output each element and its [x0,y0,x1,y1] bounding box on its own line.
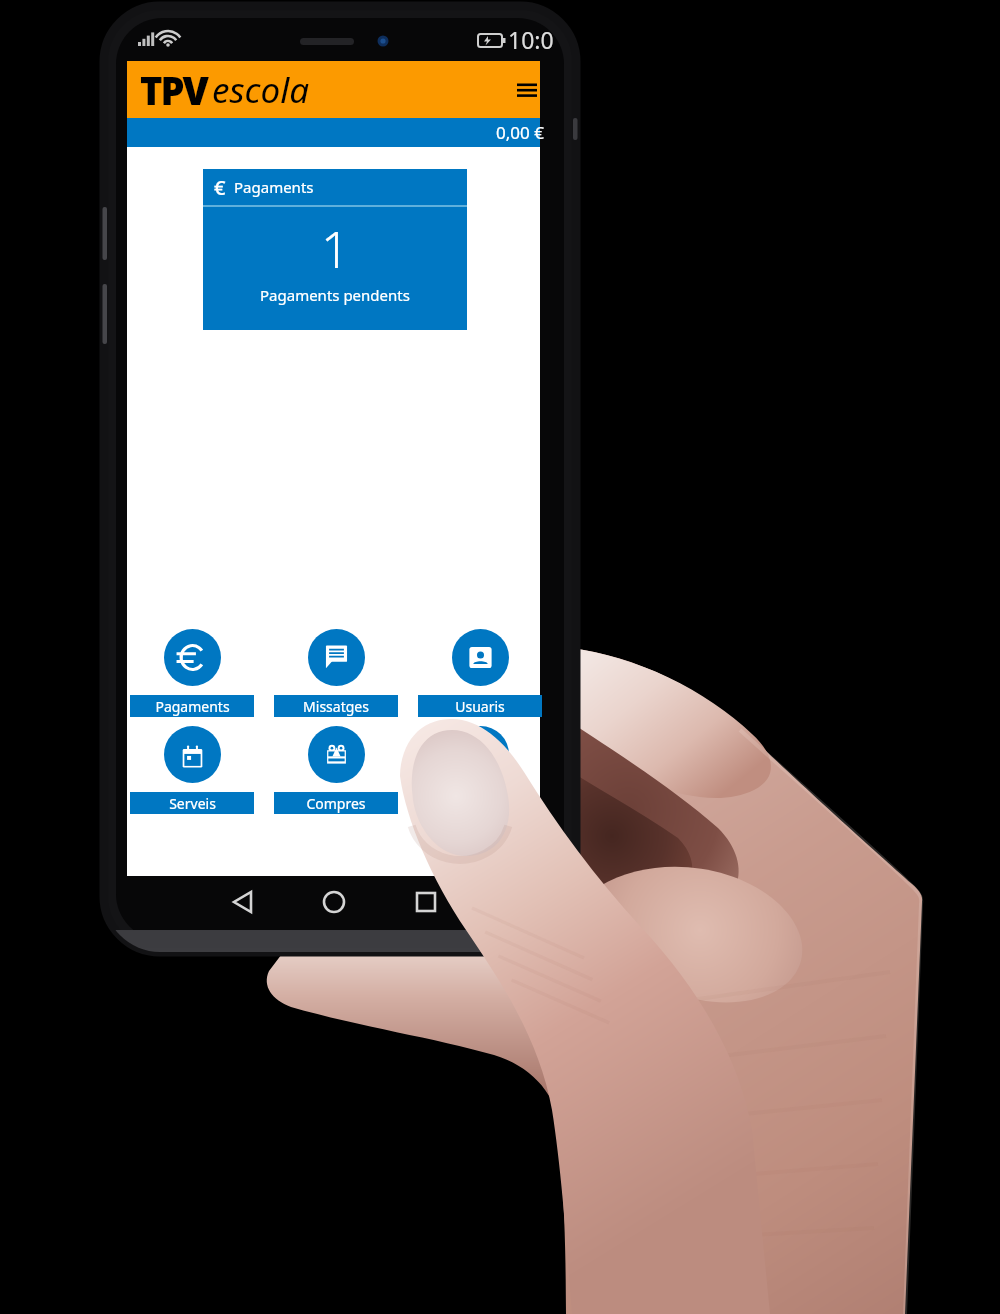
button[interactable]: Recent apps [403,880,449,926]
button[interactable]: Missatges [274,629,398,717]
button[interactable]: Compres [274,726,398,814]
button[interactable]: Serveis [130,726,254,814]
button[interactable]: Back [217,880,263,926]
button[interactable]: € [203,169,467,330]
staticText: 1 [321,215,350,283]
staticText: escola [212,66,310,114]
staticText: Serveis [169,794,216,813]
button[interactable]: Home [311,880,357,926]
button[interactable]: Menu [517,77,537,103]
staticText: 0,00 € [496,121,544,144]
button[interactable]: Usuaris [418,629,542,717]
staticText: Compres [306,794,366,813]
button[interactable]: More [418,726,542,814]
staticText: € [214,174,226,201]
staticText: TPV [140,64,207,116]
button[interactable]: Pagaments [130,629,254,717]
staticText: Usuaris [455,697,505,716]
staticText: Pagaments [234,177,314,197]
staticText: Pagaments pendents [260,285,410,305]
staticText: Pagaments [155,697,230,716]
staticText: 10:0 [508,24,554,55]
staticText: Missatges [303,697,369,716]
